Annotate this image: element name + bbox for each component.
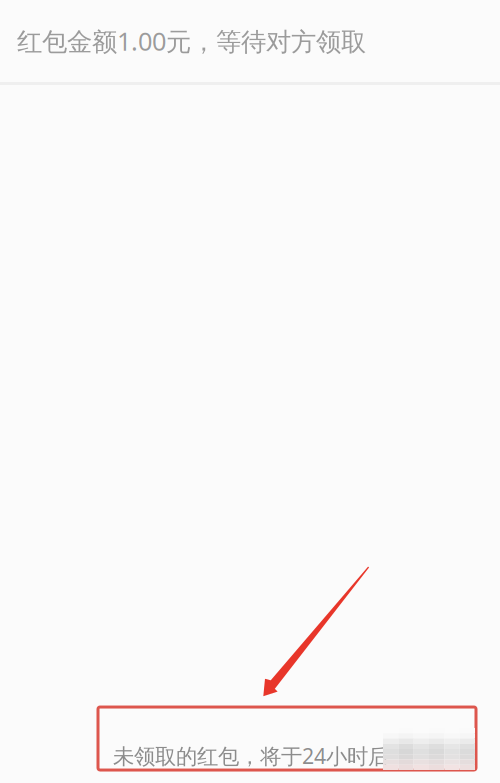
staticText: 未领取的红包，将于24小时后	[113, 742, 389, 770]
button[interactable]: 红包金额1.00元，等待对方领取	[0, 0, 500, 82]
staticText: 红包金额1.00元，等待对方领取	[17, 24, 366, 58]
